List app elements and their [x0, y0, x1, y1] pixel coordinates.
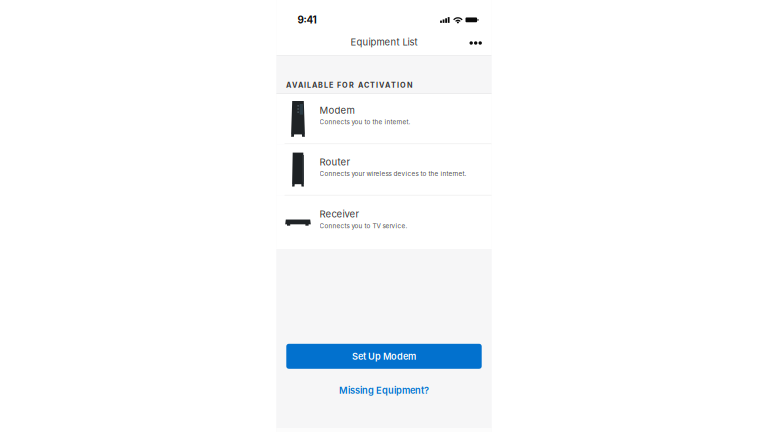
staticText: Equipment List [350, 36, 417, 48]
staticText: Receiver [319, 208, 359, 220]
staticText: Missing Equipment? [339, 385, 429, 396]
staticText: A V A I L A B L E F O R A C T I V A T I … [286, 81, 413, 90]
button[interactable]: Receiver [276, 196, 491, 249]
staticText: 9:41 [297, 14, 316, 26]
staticText: Connects you to TV service. [319, 222, 407, 230]
button[interactable]: Missing Equipment? [339, 369, 429, 412]
staticText: Connects you to the internet. [319, 118, 410, 126]
staticText: Connects your wireless devices to the in… [319, 170, 466, 178]
button[interactable]: Set Up Modem [286, 344, 482, 369]
staticText: Modem [319, 104, 354, 116]
button[interactable]: More options [461, 28, 491, 55]
staticText: Router [319, 156, 350, 168]
button[interactable]: Modem [276, 94, 491, 144]
button[interactable]: Router [276, 144, 491, 196]
staticText: Set Up Modem [352, 351, 416, 362]
